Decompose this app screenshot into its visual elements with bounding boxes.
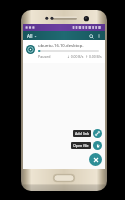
button[interactable]: ubuntu-16.10-desktop-amd64.iso	[23, 40, 105, 63]
button[interactable]: Add link	[73, 129, 102, 138]
staticText: ↓ 0.00 B/s ↑ 0.00 B/s	[67, 54, 102, 59]
staticText: Open file	[73, 143, 89, 148]
staticText: All	[27, 33, 33, 39]
staticText: Paused	[38, 54, 51, 59]
button[interactable]: Close add menu	[89, 153, 102, 166]
staticText: Add link	[75, 131, 89, 136]
button[interactable]: All downloads filter	[26, 32, 38, 40]
button[interactable]: Open file	[71, 141, 102, 150]
staticText: ubuntu-16.10-desktop-amd64.iso	[38, 43, 102, 49]
button[interactable]: More options	[95, 32, 102, 39]
button[interactable]: Search	[87, 32, 95, 40]
